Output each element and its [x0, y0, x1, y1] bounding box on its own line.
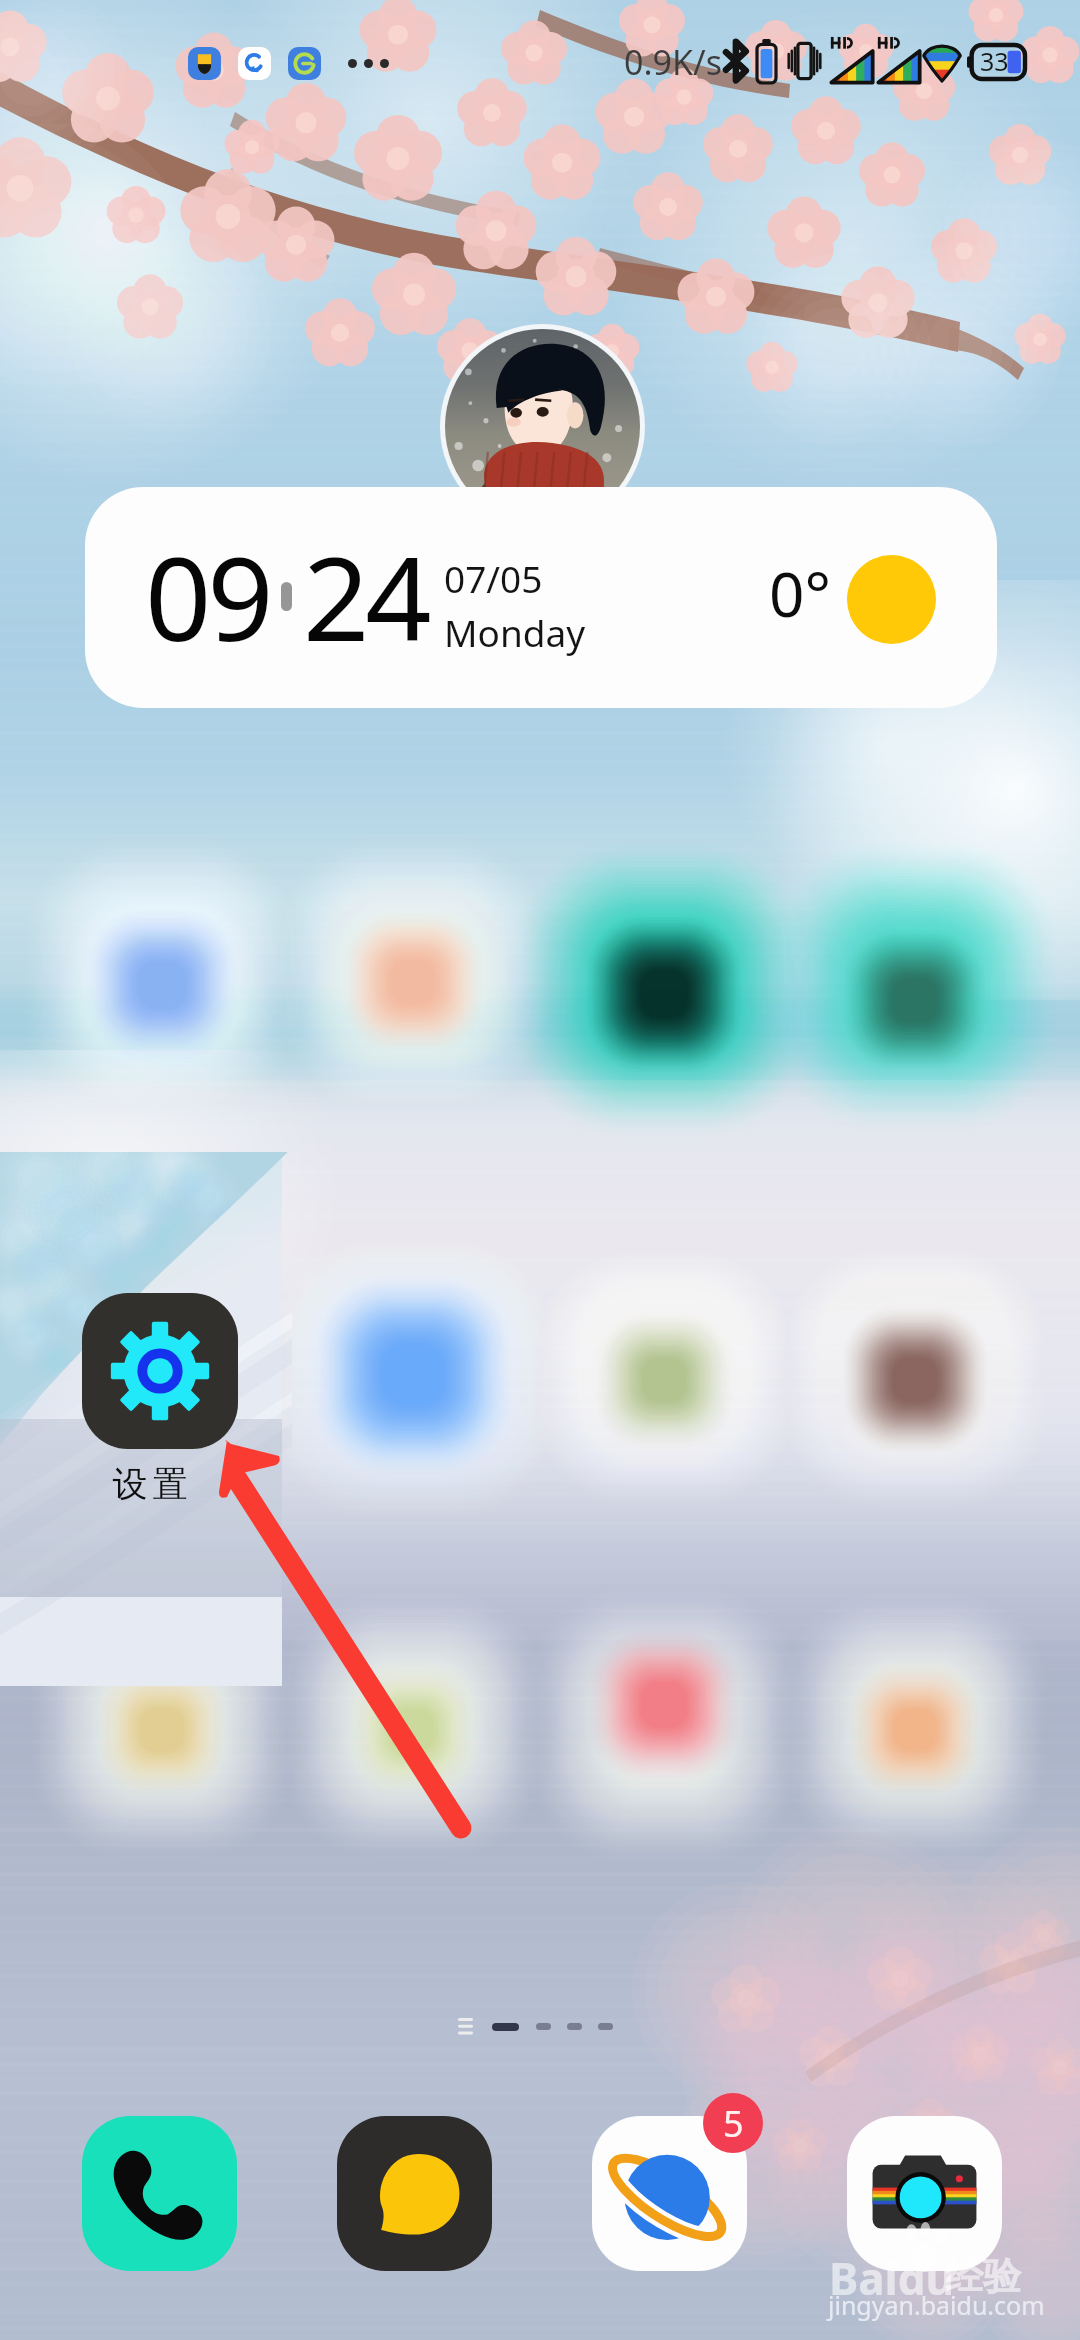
button[interactable]: Camera [847, 2116, 1002, 2271]
staticText: 经验 [945, 2252, 1021, 2300]
staticText: 24 [303, 517, 428, 675]
staticText: 09 [145, 517, 270, 675]
button[interactable]: Browser [592, 2116, 747, 2271]
staticText: 0.9K/s [624, 39, 722, 85]
button[interactable]: Messages [337, 2116, 492, 2271]
staticText: 0° [769, 551, 832, 635]
staticText: 5 [723, 2099, 744, 2148]
staticText: Baidu [829, 2248, 955, 2308]
button[interactable]: Profile photo [440, 324, 645, 529]
staticText: 设置 [110, 1462, 190, 1506]
button[interactable]: Phone [82, 2116, 237, 2271]
button[interactable]: Settings [0, 1152, 282, 1597]
staticText: 07/05 [444, 553, 543, 603]
staticText: Monday [444, 607, 586, 657]
staticText: 33 [980, 44, 1009, 78]
staticText: jingyan.baidu.com [828, 2288, 1045, 2322]
button[interactable]: 09 [85, 487, 997, 708]
